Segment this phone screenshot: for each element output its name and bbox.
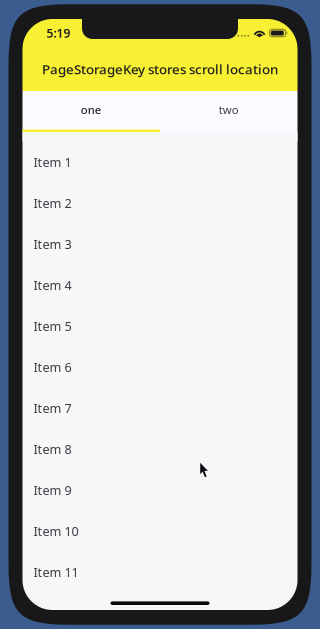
- button[interactable]: Item 1: [22, 141, 297, 182]
- staticText: Item 8: [33, 440, 71, 458]
- staticText: Item 3: [33, 235, 71, 253]
- staticText: PageStorageKey stores scroll location: [42, 60, 278, 78]
- button[interactable]: Item 8: [22, 428, 297, 469]
- staticText: Item 4: [33, 276, 71, 294]
- button[interactable]: Item 4: [22, 264, 297, 305]
- staticText: Item 6: [33, 358, 71, 376]
- staticText: Item 10: [33, 522, 78, 540]
- staticText: Item 11: [33, 563, 78, 581]
- staticText: one: [81, 102, 102, 117]
- staticText: Item 1: [33, 153, 71, 171]
- button[interactable]: Item 9: [22, 469, 297, 510]
- staticText: 5:19: [46, 25, 70, 41]
- staticText: two: [219, 102, 239, 117]
- staticText: Item 7: [33, 399, 71, 417]
- button[interactable]: Item 6: [22, 346, 297, 387]
- button[interactable]: Item 2: [22, 182, 297, 223]
- button[interactable]: Item 11: [22, 551, 297, 592]
- button[interactable]: two: [160, 91, 297, 132]
- staticText: Item 9: [33, 481, 71, 499]
- button[interactable]: Item 3: [22, 223, 297, 264]
- button[interactable]: Item 5: [22, 305, 297, 346]
- button[interactable]: Item 7: [22, 387, 297, 428]
- button[interactable]: Item 10: [22, 510, 297, 551]
- staticText: Item 2: [33, 194, 71, 212]
- button[interactable]: one: [22, 91, 160, 132]
- staticText: Item 5: [33, 317, 71, 335]
